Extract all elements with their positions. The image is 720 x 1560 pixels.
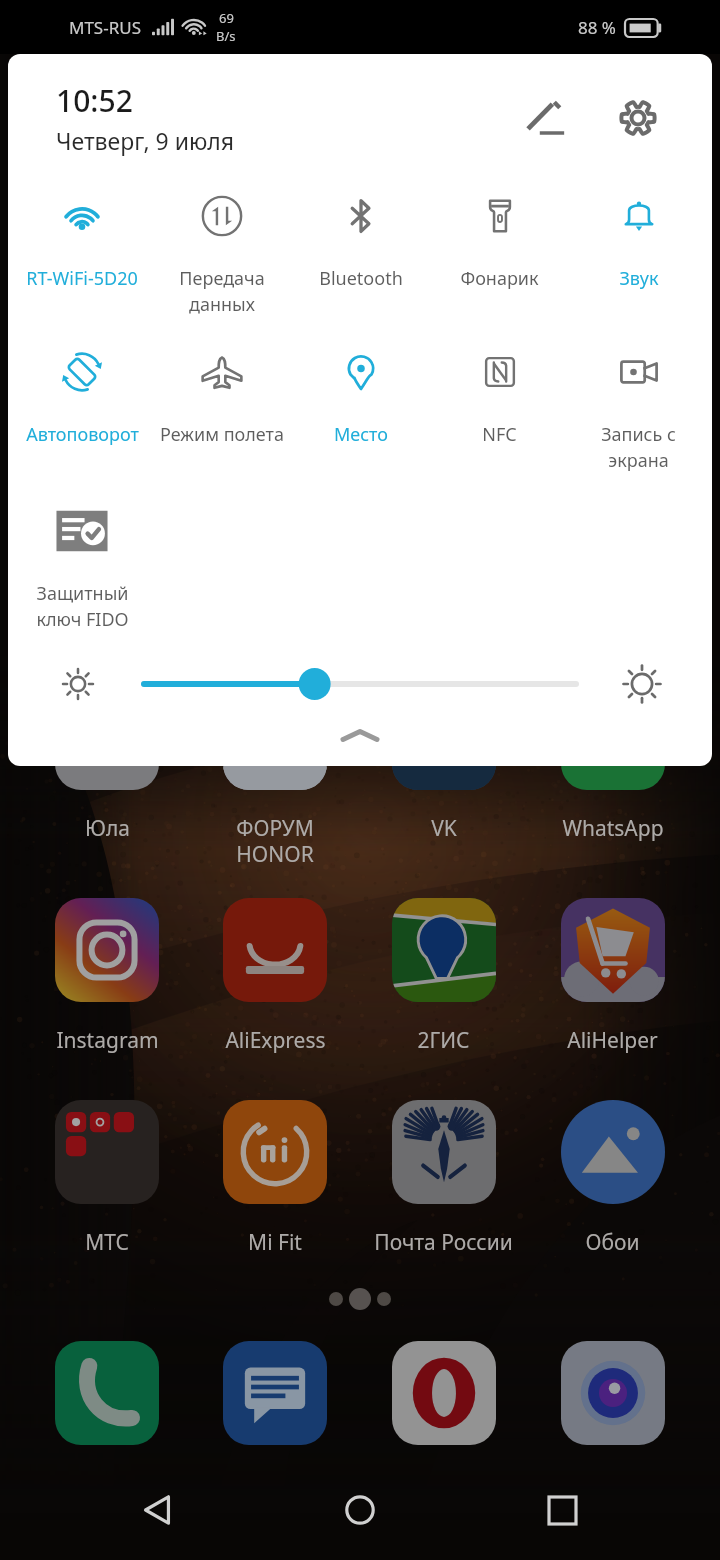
button[interactable]: AliHelper <box>528 898 697 1055</box>
button[interactable]: Collapse <box>8 714 712 766</box>
button[interactable]: 2ГИС <box>359 898 528 1055</box>
button[interactable]: Запись с экрана <box>569 344 708 473</box>
staticText: Защитный ключ FIDO <box>36 581 129 632</box>
staticText: 10:52 <box>56 80 133 121</box>
staticText: VK <box>431 814 457 843</box>
staticText: WhatsApp <box>562 814 664 843</box>
staticText: Место <box>334 422 388 447</box>
staticText: NFC <box>482 422 517 447</box>
button[interactable]: Юла <box>23 686 191 843</box>
staticText: 2ГИС <box>417 1026 470 1055</box>
staticText: Запись с экрана <box>601 422 676 473</box>
button[interactable]: Settings <box>610 90 666 146</box>
button[interactable]: VK <box>359 686 528 843</box>
button[interactable]: Bluetooth <box>291 188 430 291</box>
button[interactable]: Почта России <box>359 1100 528 1257</box>
button[interactable]: AliExpress <box>191 898 359 1055</box>
button[interactable]: Brightness <box>144 662 576 706</box>
button[interactable]: RT-WiFi-5D20 <box>12 188 152 291</box>
staticText: Автоповорот <box>26 422 139 447</box>
button[interactable]: Автоповорот <box>12 344 152 447</box>
button[interactable]: Mi Fit <box>191 1100 359 1257</box>
staticText: 88 % <box>578 16 616 39</box>
button[interactable]: Back <box>56 1460 258 1560</box>
button[interactable]: Место <box>291 344 430 447</box>
staticText: Фонарик <box>460 266 539 291</box>
button[interactable]: Messages <box>191 1341 359 1445</box>
button[interactable]: WhatsApp <box>528 686 697 843</box>
staticText: Четверг, 9 июля <box>56 125 235 156</box>
staticText: ФОРУМ HONOR <box>236 814 314 869</box>
staticText: 69 <box>219 9 234 27</box>
button[interactable]: Фонарик <box>430 188 569 291</box>
staticText: Юла <box>85 814 130 843</box>
button[interactable]: Instagram <box>23 898 191 1055</box>
button[interactable]: Edit quick settings <box>516 90 572 146</box>
staticText: Обои <box>585 1228 640 1257</box>
button[interactable]: Camera <box>528 1341 697 1445</box>
staticText: AliExpress <box>225 1026 326 1055</box>
staticText: AliHelper <box>567 1026 658 1055</box>
button[interactable]: Home <box>258 1460 461 1560</box>
button[interactable]: Opera browser <box>359 1341 528 1445</box>
staticText: Instagram <box>56 1026 159 1055</box>
button[interactable]: Звук <box>569 188 708 291</box>
button[interactable]: NFC <box>430 344 569 447</box>
button[interactable]: Lower brightness <box>50 656 106 712</box>
staticText: MTS-RUS <box>69 16 142 39</box>
button[interactable]: Recent apps <box>461 1460 664 1560</box>
button[interactable]: Phone <box>23 1341 191 1445</box>
button[interactable]: Передача данных <box>152 188 291 317</box>
button[interactable]: Обои <box>528 1100 697 1257</box>
staticText: B/s <box>216 27 236 45</box>
staticText: Звук <box>619 266 659 291</box>
button[interactable]: Защитный ключ FIDO <box>12 503 152 632</box>
button[interactable]: Raise brightness <box>614 656 670 712</box>
staticText: RT-WiFi-5D20 <box>26 266 138 291</box>
staticText: Почта России <box>374 1228 513 1257</box>
staticText: МТС <box>85 1228 129 1257</box>
button[interactable]: Режим полета <box>152 344 291 447</box>
button[interactable]: МТС <box>23 1100 191 1257</box>
staticText: Передача данных <box>179 266 265 317</box>
staticText: Bluetooth <box>319 266 403 291</box>
staticText: Режим полета <box>160 422 284 447</box>
staticText: Mi Fit <box>248 1228 302 1257</box>
button[interactable]: ФОРУМ HONOR <box>191 686 359 869</box>
